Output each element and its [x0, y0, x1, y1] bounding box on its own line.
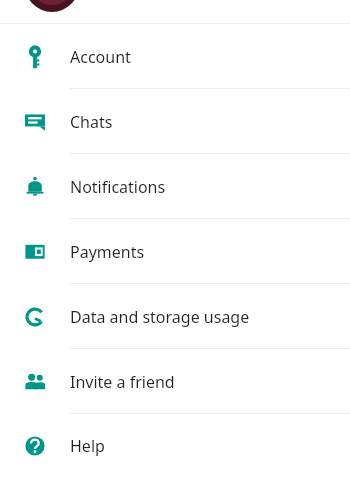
staticText: Chats — [70, 111, 113, 133]
other: Profile — [0, 0, 350, 23]
button[interactable]: Payments — [0, 219, 350, 284]
button[interactable]: Account — [0, 24, 350, 89]
button[interactable]: Data and storage usage — [0, 284, 350, 349]
button[interactable]: Help — [0, 414, 350, 478]
staticText: Invite a friend — [70, 371, 175, 393]
staticText: Notifications — [70, 176, 166, 198]
staticText: Account — [70, 46, 131, 68]
button[interactable]: Profile — [0, 0, 350, 23]
staticText: Payments — [70, 241, 145, 263]
staticText: Data and storage usage — [70, 306, 250, 328]
button[interactable]: Chats — [0, 89, 350, 154]
staticText: Help — [70, 435, 105, 457]
button[interactable]: Notifications — [0, 154, 350, 219]
button[interactable]: Invite a friend — [0, 349, 350, 414]
